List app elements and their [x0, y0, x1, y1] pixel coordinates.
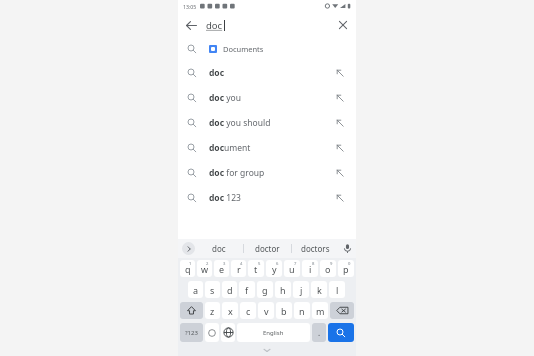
- other: Change language: [223, 327, 234, 338]
- staticText: ?123: [185, 329, 198, 337]
- button[interactable]: doctor: [244, 239, 291, 258]
- button[interactable]: Documents: [178, 38, 356, 60]
- staticText: x: [228, 305, 233, 317]
- staticText: doc: [209, 67, 225, 79]
- button[interactable]: Backspace: [330, 302, 354, 319]
- button[interactable]: Search: [328, 323, 354, 342]
- staticText: p: [343, 263, 349, 275]
- button[interactable]: t: [248, 260, 264, 277]
- button[interactable]: l: [329, 281, 345, 298]
- staticText: 9: [330, 261, 333, 267]
- button[interactable]: g: [257, 281, 273, 298]
- button[interactable]: x: [222, 302, 238, 319]
- staticText: f: [245, 284, 249, 296]
- button[interactable]: h: [275, 281, 291, 298]
- staticText: q: [185, 263, 191, 275]
- staticText: doc you should: [209, 117, 271, 129]
- staticText: e: [219, 263, 225, 275]
- staticText: r: [237, 263, 241, 275]
- button[interactable]: u: [284, 260, 300, 277]
- staticText: document: [209, 142, 251, 154]
- staticText: a: [193, 284, 199, 296]
- other: Search: [336, 328, 346, 338]
- button[interactable]: Clear search: [330, 12, 356, 38]
- staticText: doc you: [209, 92, 242, 104]
- button[interactable]: f: [239, 281, 255, 298]
- staticText: doctor: [255, 243, 280, 254]
- button[interactable]: e: [214, 260, 229, 277]
- staticText: 0: [348, 261, 351, 267]
- other: Emoji: [208, 329, 216, 337]
- staticText: doc: [206, 19, 223, 32]
- staticText: 2: [206, 261, 209, 267]
- staticText: w: [201, 263, 209, 275]
- staticText: i: [309, 263, 312, 275]
- staticText: Documents: [223, 44, 264, 54]
- button[interactable]: Change language: [221, 323, 235, 342]
- staticText: j: [300, 284, 303, 296]
- button[interactable]: doc 123: [178, 185, 356, 210]
- staticText: y: [272, 263, 277, 275]
- staticText: g: [262, 284, 268, 296]
- staticText: s: [210, 284, 215, 296]
- staticText: o: [325, 263, 331, 275]
- staticText: 13:05: [183, 3, 197, 10]
- button[interactable]: r: [231, 260, 246, 277]
- button[interactable]: i: [302, 260, 318, 277]
- button[interactable]: a: [188, 281, 203, 298]
- button[interactable]: p: [338, 260, 354, 277]
- button[interactable]: Back: [178, 12, 204, 38]
- button[interactable]: doctors: [292, 239, 339, 258]
- button[interactable]: j: [293, 281, 309, 298]
- button[interactable]: n: [294, 302, 310, 319]
- staticText: .: [318, 327, 321, 338]
- button[interactable]: y: [266, 260, 282, 277]
- button[interactable]: doc you should: [178, 110, 356, 135]
- button[interactable]: m: [312, 302, 328, 319]
- staticText: m: [316, 305, 325, 317]
- button[interactable]: doc for group: [178, 160, 356, 185]
- button[interactable]: Voice input: [339, 239, 356, 258]
- other: Backspace: [336, 304, 349, 317]
- staticText: doc: [212, 243, 226, 254]
- button[interactable]: doc you: [178, 85, 356, 110]
- button[interactable]: s: [205, 281, 220, 298]
- button[interactable]: d: [222, 281, 237, 298]
- button[interactable]: Shift: [180, 302, 203, 319]
- button[interactable]: v: [258, 302, 274, 319]
- button[interactable]: More suggestions: [182, 242, 195, 255]
- staticText: n: [299, 305, 305, 317]
- button[interactable]: b: [276, 302, 292, 319]
- button[interactable]: o: [320, 260, 336, 277]
- other: Shift: [186, 305, 197, 316]
- staticText: v: [264, 305, 269, 317]
- staticText: 3: [223, 261, 226, 267]
- button[interactable]: doc: [178, 60, 356, 85]
- staticText: t: [254, 263, 258, 275]
- button[interactable]: doc: [195, 239, 243, 258]
- staticText: 8: [312, 261, 315, 267]
- staticText: 5: [258, 261, 261, 267]
- staticText: doctors: [301, 243, 330, 254]
- button[interactable]: .: [312, 323, 326, 342]
- staticText: z: [210, 305, 215, 317]
- button[interactable]: z: [205, 302, 220, 319]
- staticText: doc 123: [209, 192, 241, 204]
- staticText: h: [280, 284, 286, 296]
- staticText: l: [336, 284, 339, 296]
- staticText: c: [246, 305, 251, 317]
- staticText: English: [263, 329, 284, 337]
- button[interactable]: c: [240, 302, 256, 319]
- button[interactable]: English: [237, 323, 310, 342]
- staticText: u: [289, 263, 295, 275]
- button[interactable]: q: [180, 260, 195, 277]
- button[interactable]: w: [197, 260, 212, 277]
- staticText: 6: [276, 261, 279, 267]
- button[interactable]: k: [311, 281, 327, 298]
- staticText: b: [281, 305, 287, 317]
- button[interactable]: document: [178, 135, 356, 160]
- staticText: 1: [189, 261, 192, 267]
- button[interactable]: Emoji: [205, 323, 219, 342]
- button[interactable]: ?123: [180, 323, 203, 342]
- staticText: d: [227, 284, 233, 296]
